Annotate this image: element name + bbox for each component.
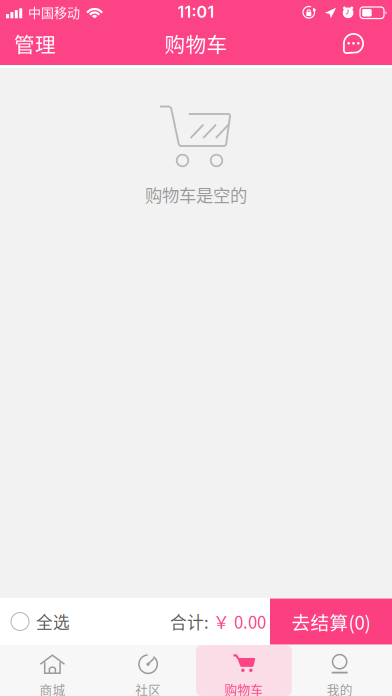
staticText: 我的 (327, 680, 353, 696)
staticText: 11:01 (177, 2, 214, 22)
button[interactable]: 购物车 (196, 645, 292, 696)
staticText: 管理 (14, 28, 56, 58)
staticText: 商城 (39, 680, 65, 696)
button[interactable]: 社区 (100, 645, 196, 696)
staticText: 中国移动 (28, 2, 80, 21)
staticText: 去结算(0) (291, 608, 370, 635)
staticText: 全选 (36, 609, 70, 633)
button[interactable]: Messages (329, 22, 392, 65)
button[interactable]: 我的 (292, 645, 388, 696)
staticText: ￥ 0.00 (209, 609, 266, 633)
staticText: 合计: (170, 609, 209, 633)
button[interactable]: 全选 (0, 596, 80, 646)
staticText: 购物车 (164, 28, 227, 58)
button[interactable]: 去结算(0) (270, 598, 392, 644)
staticText: 购物车是空的 (145, 182, 247, 207)
staticText: 社区 (135, 680, 161, 696)
button[interactable]: 管理 (0, 20, 70, 66)
button[interactable]: 商城 (4, 645, 100, 696)
staticText: 购物车 (224, 680, 263, 696)
